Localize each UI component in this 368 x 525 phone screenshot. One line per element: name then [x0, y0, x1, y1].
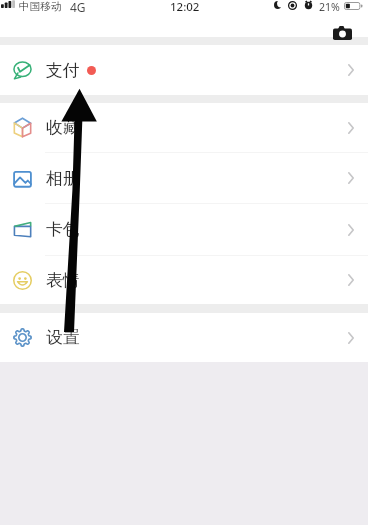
button[interactable]: 相册: [0, 153, 368, 203]
staticText: 卡包: [46, 219, 80, 240]
staticText: 21%: [319, 0, 340, 14]
button[interactable]: 卡包: [0, 204, 368, 255]
staticText: 4G: [70, 0, 86, 15]
button[interactable]: Camera: [328, 21, 356, 44]
staticText: 中国移动: [19, 0, 62, 13]
button[interactable]: 表情: [0, 256, 368, 304]
button[interactable]: 收藏: [0, 103, 368, 152]
staticText: 支付: [46, 60, 80, 81]
staticText: 设置: [46, 327, 80, 348]
staticText: 12:02: [170, 0, 200, 15]
button[interactable]: 支付: [0, 45, 368, 95]
button[interactable]: 设置: [0, 313, 368, 362]
staticText: 表情: [46, 270, 80, 291]
staticText: 相册: [46, 168, 80, 189]
staticText: 收藏: [46, 117, 80, 138]
